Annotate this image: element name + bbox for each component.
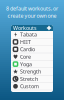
button[interactable]: Stretch (11, 75, 53, 83)
button[interactable]: Add workout (47, 26, 51, 30)
staticText: Stretch (20, 75, 38, 82)
button[interactable]: Tabata (11, 31, 53, 38)
staticText: Yoga (20, 61, 32, 68)
staticText: Tabata (20, 31, 37, 38)
staticText: Core (20, 53, 31, 60)
button[interactable]: Cardio (11, 46, 53, 53)
button[interactable]: Strength (11, 68, 53, 75)
button[interactable]: Core (11, 53, 53, 61)
button[interactable]: Custom (11, 83, 53, 90)
staticText: HIIT (20, 38, 31, 45)
staticText: Workouts (13, 24, 37, 32)
staticText: Custom (20, 83, 39, 90)
staticText: Strength (20, 68, 41, 75)
button[interactable]: HIIT (11, 38, 53, 46)
staticText: 8 default workouts, or (6, 5, 58, 12)
button[interactable]: Yoga (11, 61, 53, 68)
staticText: Cardio (20, 46, 35, 53)
staticText: create your own one (7, 12, 56, 19)
